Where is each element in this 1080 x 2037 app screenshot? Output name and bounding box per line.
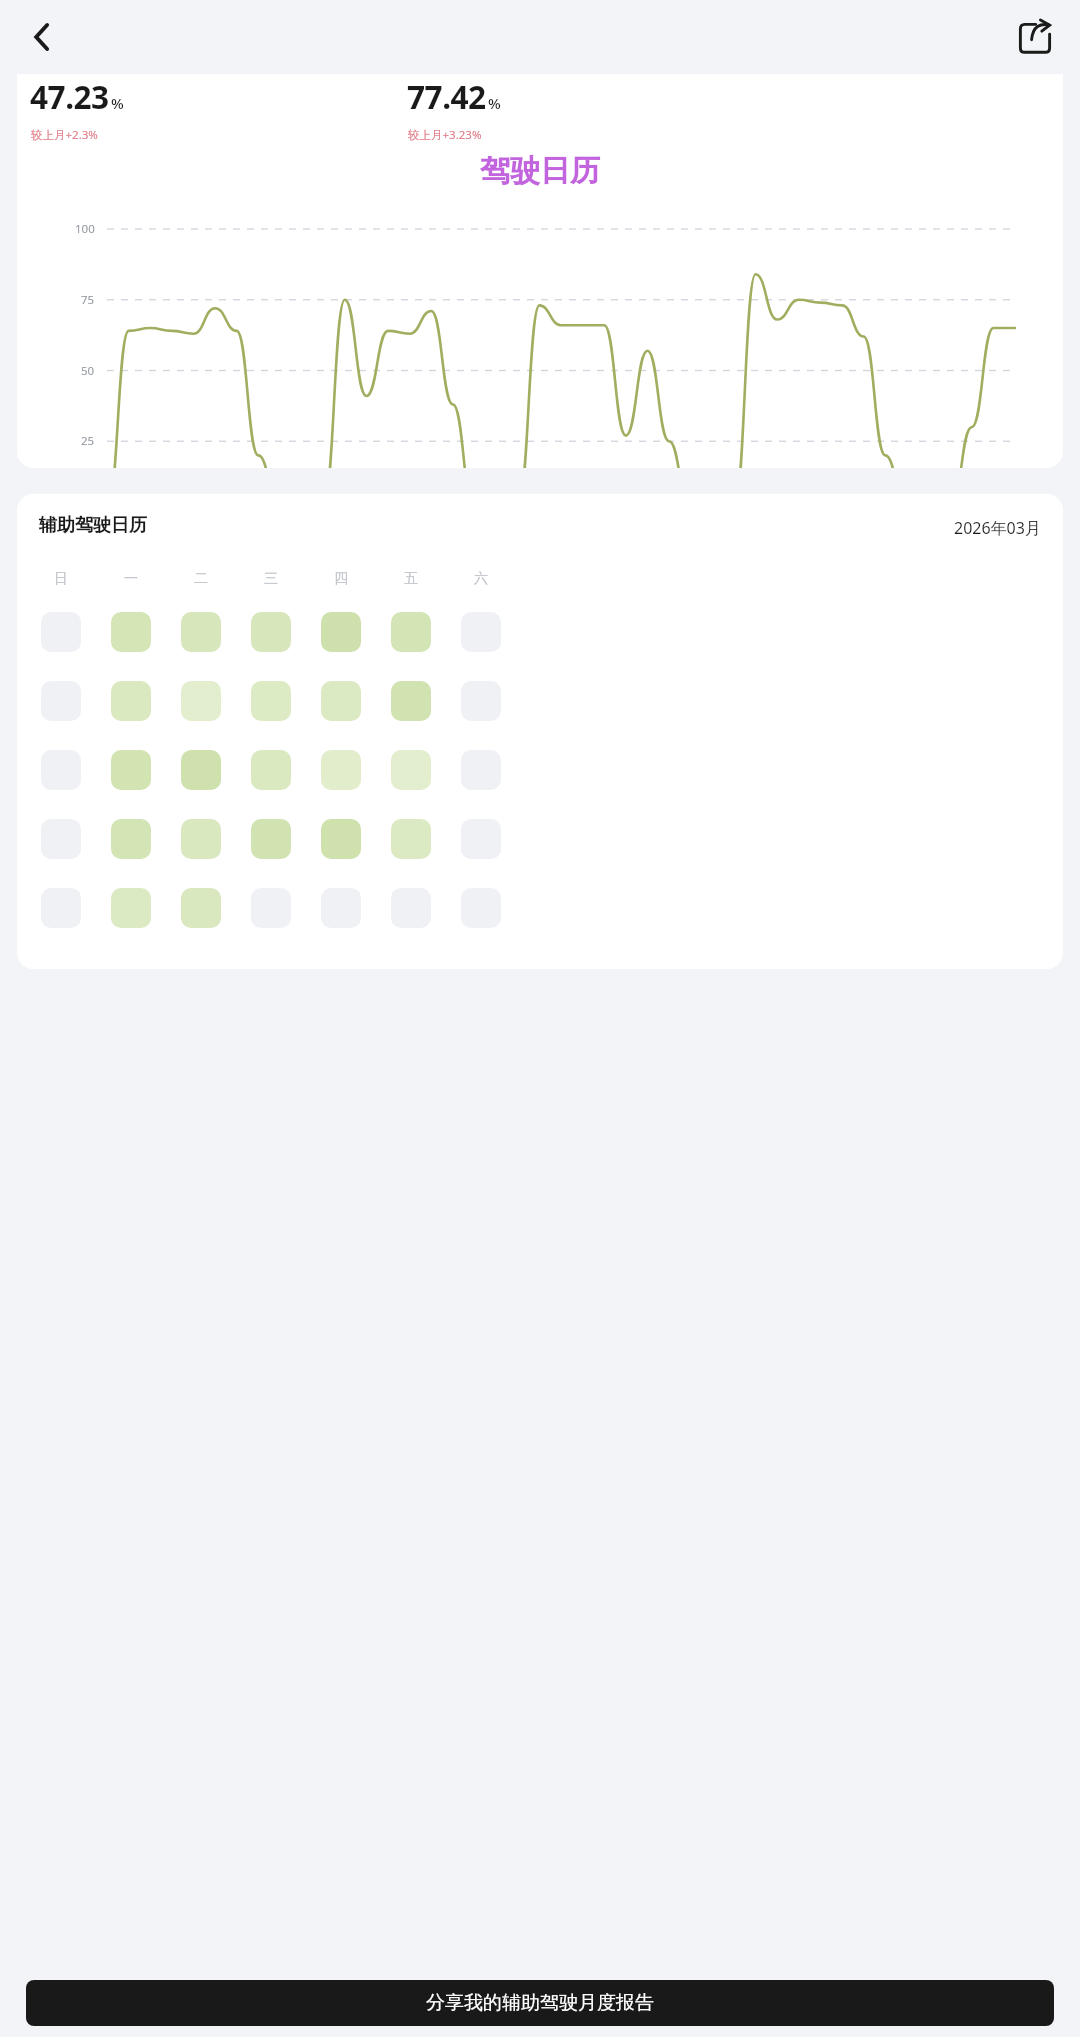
staticText: 分享我的辅助驾驶月度报告 — [426, 1991, 654, 2015]
button[interactable]: 分享我的辅助驾驶月度报告 — [26, 1980, 1054, 2026]
button[interactable]: Share — [1008, 10, 1062, 64]
button[interactable]: Back — [18, 11, 70, 63]
